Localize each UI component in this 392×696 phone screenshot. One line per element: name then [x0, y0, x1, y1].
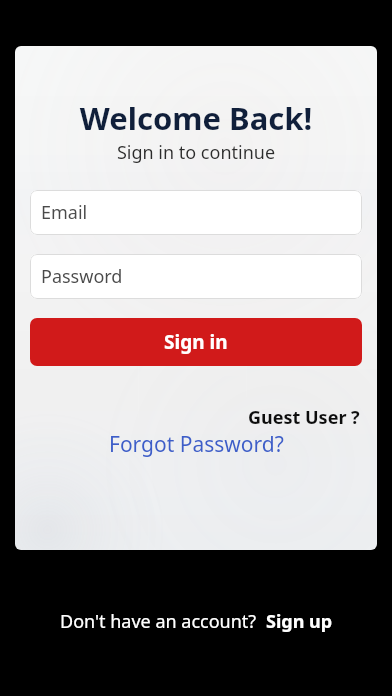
button[interactable]: Guest User ? [248, 405, 360, 430]
staticText: Welcome Back! [15, 97, 377, 139]
staticText: Don't have an account? [60, 609, 266, 634]
button[interactable]: Email [30, 190, 362, 235]
button[interactable]: Sign up [266, 609, 333, 634]
staticText: Sign in [164, 329, 228, 355]
button[interactable]: Password [30, 254, 362, 299]
staticText: Password [41, 264, 123, 289]
button[interactable]: Forgot Password? [109, 430, 284, 459]
button[interactable]: Sign in [30, 318, 362, 366]
staticText: Email [41, 200, 88, 225]
staticText: Sign in to continue [15, 140, 377, 165]
